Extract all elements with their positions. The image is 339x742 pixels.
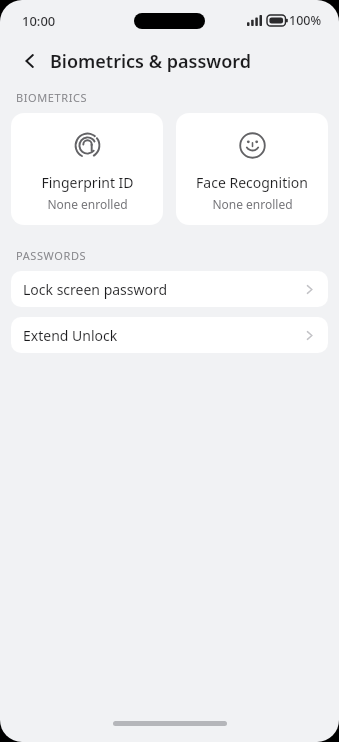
staticText: BIOMETRICS <box>16 90 88 105</box>
staticText: 100% <box>289 12 322 29</box>
button[interactable]: Back <box>14 45 46 77</box>
button[interactable]: Lock screen password <box>11 271 328 307</box>
staticText: None enrolled <box>212 196 293 212</box>
staticText: PASSWORDS <box>16 248 87 263</box>
button[interactable]: Extend Unlock <box>11 317 328 353</box>
staticText: Face Recognition <box>196 173 308 192</box>
button[interactable]: Fingerprint ID <box>11 113 163 225</box>
staticText: Biometrics & password <box>50 49 252 74</box>
staticText: Fingerprint ID <box>41 173 134 192</box>
button[interactable]: Face Recognition <box>176 113 328 225</box>
staticText: Lock screen password <box>23 280 303 299</box>
staticText: None enrolled <box>47 196 128 212</box>
staticText: Extend Unlock <box>23 326 303 345</box>
staticText: 10:00 <box>22 12 56 30</box>
